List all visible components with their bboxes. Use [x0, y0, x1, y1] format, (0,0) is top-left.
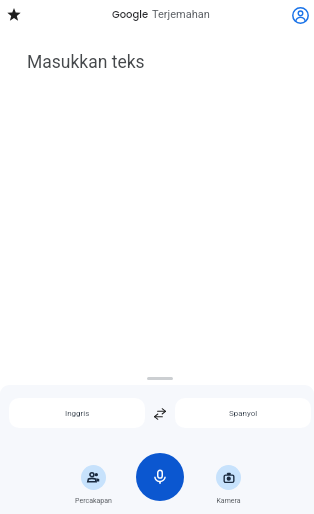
button[interactable]: Spanyol [175, 398, 311, 428]
staticText: Google [112, 7, 149, 21]
button[interactable]: Account [288, 3, 312, 27]
button[interactable]: Inggris [9, 398, 145, 428]
staticText: Masukkan teks [27, 52, 145, 73]
button[interactable]: Saved translations [2, 3, 26, 27]
staticText: Inggris [65, 409, 90, 418]
staticText: Terjemahan [152, 8, 210, 21]
staticText: Kamera [216, 497, 241, 505]
staticText: Spanyol [229, 409, 258, 418]
button[interactable]: Percakapan [63, 465, 123, 505]
button[interactable]: Kamera [198, 465, 258, 505]
button[interactable]: Swap languages [148, 402, 172, 426]
button[interactable]: Speak [136, 453, 184, 501]
button[interactable]: Masukkan teks [0, 34, 314, 374]
staticText: Percakapan [75, 497, 112, 505]
